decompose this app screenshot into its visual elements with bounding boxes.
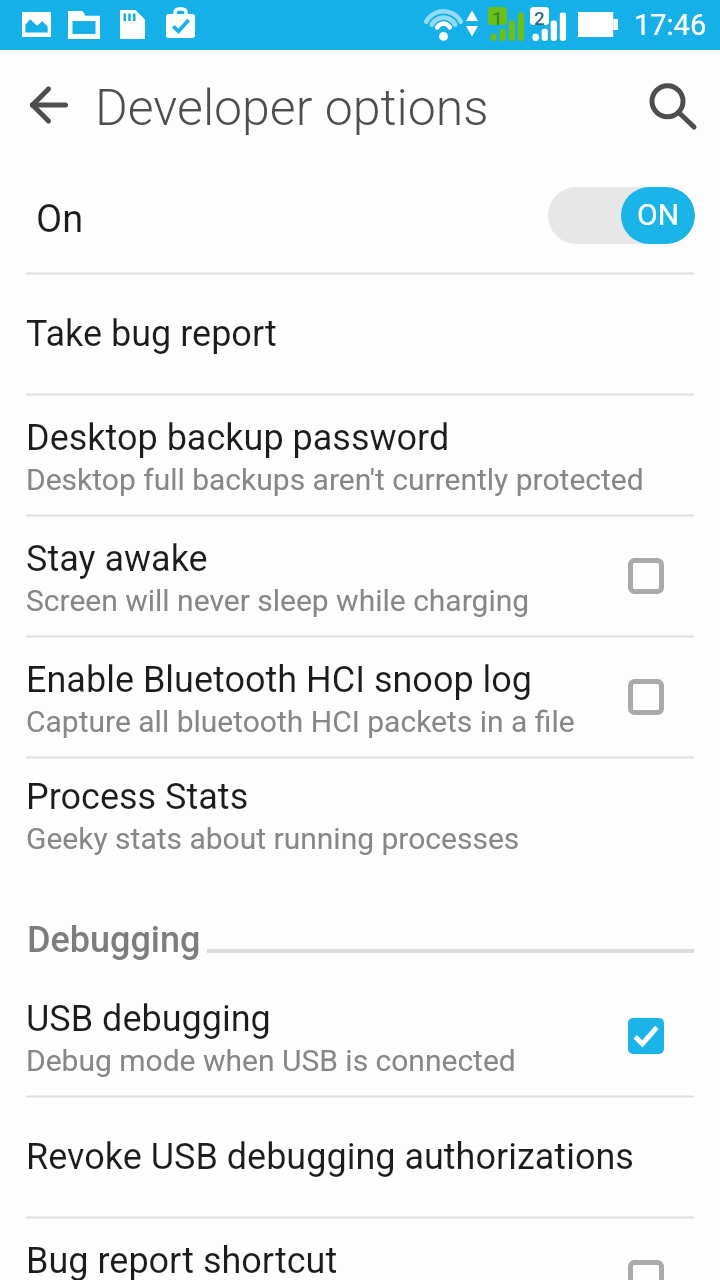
staticText: Developer options	[95, 79, 489, 138]
staticText: 1	[492, 7, 503, 25]
button[interactable]: Take bug report	[0, 273, 720, 394]
button[interactable]: ON	[548, 187, 695, 244]
button[interactable]: USB debugging	[0, 975, 720, 1096]
button[interactable]: Desktop backup password	[0, 394, 720, 515]
staticText: Desktop full backups aren't currently pr…	[26, 462, 644, 497]
staticText: USB debugging	[26, 998, 271, 1040]
staticText: 17:46	[634, 8, 707, 42]
button[interactable]: Bug report shortcut	[0, 1217, 720, 1280]
button[interactable]: Stay awake	[0, 515, 720, 636]
staticText: Geeky stats about running processes	[26, 821, 520, 856]
staticText: Stay awake	[26, 538, 208, 580]
button[interactable]: Back	[18, 75, 78, 135]
staticText: Screen will never sleep while charging	[26, 583, 530, 618]
button[interactable]: On	[0, 162, 720, 273]
staticText: Revoke USB debugging authorizations	[26, 1136, 634, 1178]
staticText: Bug report shortcut	[26, 1240, 338, 1280]
staticText: Enable Bluetooth HCI snoop log	[26, 659, 533, 701]
button[interactable]: Revoke USB debugging authorizations	[0, 1096, 720, 1217]
button[interactable]: Bug report shortcut	[615, 1247, 677, 1280]
staticText: Capture all bluetooth HCI packets in a f…	[26, 704, 575, 739]
button[interactable]: Enable Bluetooth HCI snoop log	[0, 636, 720, 757]
button[interactable]: Stay awake	[615, 545, 677, 607]
staticText: On	[36, 197, 84, 242]
button[interactable]: Enable Bluetooth HCI snoop log	[615, 666, 677, 728]
staticText: Debugging	[27, 919, 201, 961]
staticText: Debug mode when USB is connected	[26, 1043, 516, 1078]
staticText: Take bug report	[26, 313, 277, 355]
staticText: 2	[534, 7, 545, 25]
button[interactable]: Process Stats	[0, 757, 720, 878]
button[interactable]: USB debugging	[615, 1005, 677, 1067]
staticText: Process Stats	[26, 776, 249, 818]
button[interactable]: Search	[636, 72, 700, 136]
staticText: Desktop backup password	[26, 417, 450, 459]
staticText: ON	[637, 197, 680, 232]
